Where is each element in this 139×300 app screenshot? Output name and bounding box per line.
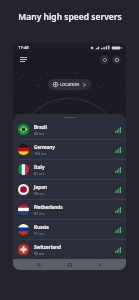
staticText: 44 ms [34, 131, 45, 136]
staticText: 98 ms [34, 191, 45, 196]
button[interactable]: Recent apps [33, 259, 44, 270]
staticText: Netherlands [34, 204, 63, 210]
button[interactable]: Menu [18, 54, 28, 64]
staticText: Many high speed servers [18, 11, 122, 23]
staticText: 81 ms [34, 171, 45, 176]
button[interactable]: Russia [13, 220, 126, 239]
button[interactable]: Brazil [13, 120, 126, 139]
button[interactable]: Japan [13, 180, 126, 199]
staticText: Brazil [34, 124, 47, 130]
staticText: 96 ms [34, 251, 45, 256]
button[interactable]: Home [64, 259, 75, 270]
button[interactable]: Switzerland [13, 240, 126, 259]
button[interactable]: Premium [100, 55, 109, 64]
staticText: 91 ms [34, 231, 45, 236]
button[interactable]: Netherlands [13, 200, 126, 219]
staticText: Russia [34, 224, 49, 230]
staticText: 87 ms [34, 211, 45, 216]
button[interactable]: Germany [13, 140, 126, 159]
button[interactable]: Settings [112, 55, 121, 64]
staticText: LOCATION [60, 82, 80, 87]
staticText: Switzerland [34, 244, 61, 250]
staticText: Italy [34, 164, 45, 170]
button[interactable]: LOCATION [48, 79, 91, 90]
staticText: Japan [34, 184, 47, 190]
staticText: Germany [34, 144, 55, 150]
staticText: 104 ms [34, 151, 47, 156]
button[interactable]: Italy [13, 160, 126, 179]
button[interactable]: Back [95, 259, 106, 270]
staticText: 17:48 [18, 45, 29, 51]
